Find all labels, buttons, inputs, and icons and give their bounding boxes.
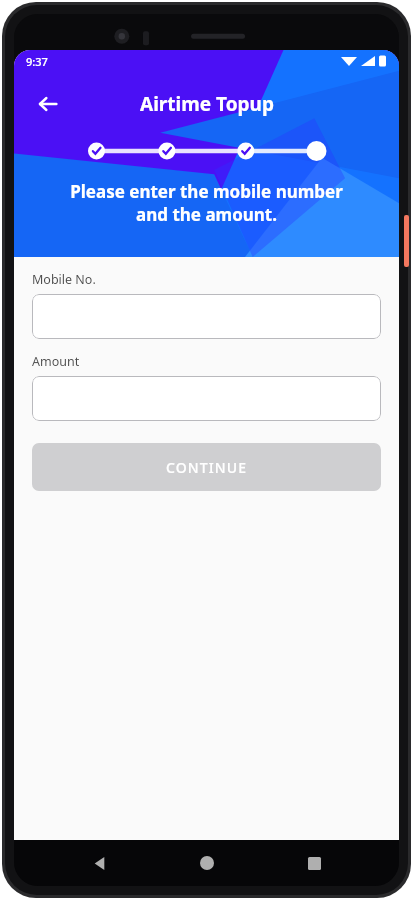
staticText: Airtime Topup: [140, 91, 274, 117]
button[interactable]: Back: [30, 86, 66, 122]
other: Power button: [404, 215, 409, 267]
staticText: 9:37: [26, 54, 48, 69]
button[interactable]: Amount input: [32, 376, 381, 421]
staticText: Amount: [32, 353, 80, 370]
staticText: Mobile No.: [32, 271, 96, 288]
button[interactable]: Back: [77, 841, 121, 885]
button[interactable]: CONTINUE: [32, 443, 381, 491]
button[interactable]: Recent apps: [292, 841, 336, 885]
staticText: CONTINUE: [166, 458, 248, 477]
staticText: Please enter the mobile number and the a…: [36, 180, 377, 226]
button[interactable]: Home: [185, 841, 229, 885]
button[interactable]: Mobile number input: [32, 294, 381, 339]
